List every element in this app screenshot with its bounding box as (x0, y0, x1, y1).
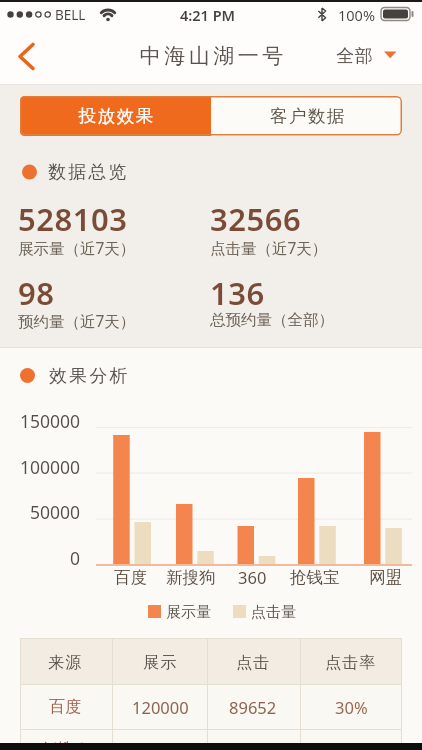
staticText: 客户数据 (269, 105, 345, 127)
staticText: 网盟 (369, 567, 402, 588)
staticText: 150000 (20, 409, 81, 433)
button[interactable]: 全部 (336, 41, 402, 71)
button[interactable] (6, 38, 44, 76)
staticText: BELL (55, 6, 86, 24)
staticText: 30% (335, 696, 368, 718)
staticText: 中海山湖一号 (138, 43, 285, 69)
staticText: 百度 (114, 567, 147, 588)
staticText: 点击率 (325, 653, 377, 673)
staticText: 数据总览 (48, 161, 129, 184)
staticText: 点击 (236, 653, 271, 673)
staticText: 来源 (48, 653, 83, 673)
staticText: 50000 (30, 500, 81, 524)
staticText: 抢钱宝 (290, 567, 340, 588)
staticText: 效果分析 (49, 365, 130, 388)
button[interactable]: 客户数据 (211, 96, 402, 136)
staticText: 百度 (49, 697, 81, 717)
staticText: 投放效果 (78, 105, 154, 127)
staticText: 总预约量（全部） (210, 310, 334, 330)
staticText: 点击量（近7天） (210, 237, 328, 258)
staticText: 120000 (132, 696, 189, 718)
staticText: 0 (70, 546, 81, 570)
staticText: 展示 (143, 653, 178, 673)
staticText: 全部 (336, 45, 373, 68)
staticText: 100000 (20, 455, 81, 479)
staticText: 89652 (229, 696, 277, 718)
staticText: 98 (18, 272, 55, 312)
staticText: 100% (338, 5, 375, 25)
staticText: 65000 (137, 739, 183, 750)
staticText: 新搜狗 (166, 567, 216, 588)
staticText: 新搜狗 (41, 740, 89, 750)
staticText: 528103 (18, 198, 128, 238)
staticText: 展示量（近7天） (18, 237, 136, 258)
staticText: 4:21 PM (180, 5, 236, 25)
button[interactable]: 投放效果 (20, 96, 211, 136)
staticText: 136 (210, 272, 265, 312)
staticText: 360 (238, 566, 267, 588)
staticText: 32566 (210, 198, 302, 238)
staticText: 预约量（近7天） (18, 310, 136, 331)
staticText: 点击量 (251, 603, 296, 622)
staticText: 展示量 (166, 603, 211, 622)
